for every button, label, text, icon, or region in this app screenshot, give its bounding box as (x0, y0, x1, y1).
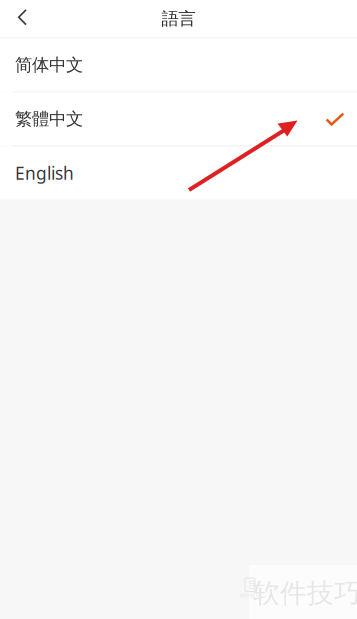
staticText: 語言 (161, 8, 195, 29)
button[interactable]: 繁體中文 (0, 92, 357, 145)
button[interactable]: 简体中文 (0, 38, 357, 91)
staticText: 简体中文 (15, 54, 83, 76)
staticText: 软件技巧 (240, 592, 260, 599)
staticText: English (15, 161, 74, 184)
staticText: 软件技巧 (253, 577, 357, 610)
button[interactable]: English (0, 146, 357, 199)
button[interactable]: Back (0, 0, 41, 37)
staticText: 繁體中文 (15, 108, 83, 130)
